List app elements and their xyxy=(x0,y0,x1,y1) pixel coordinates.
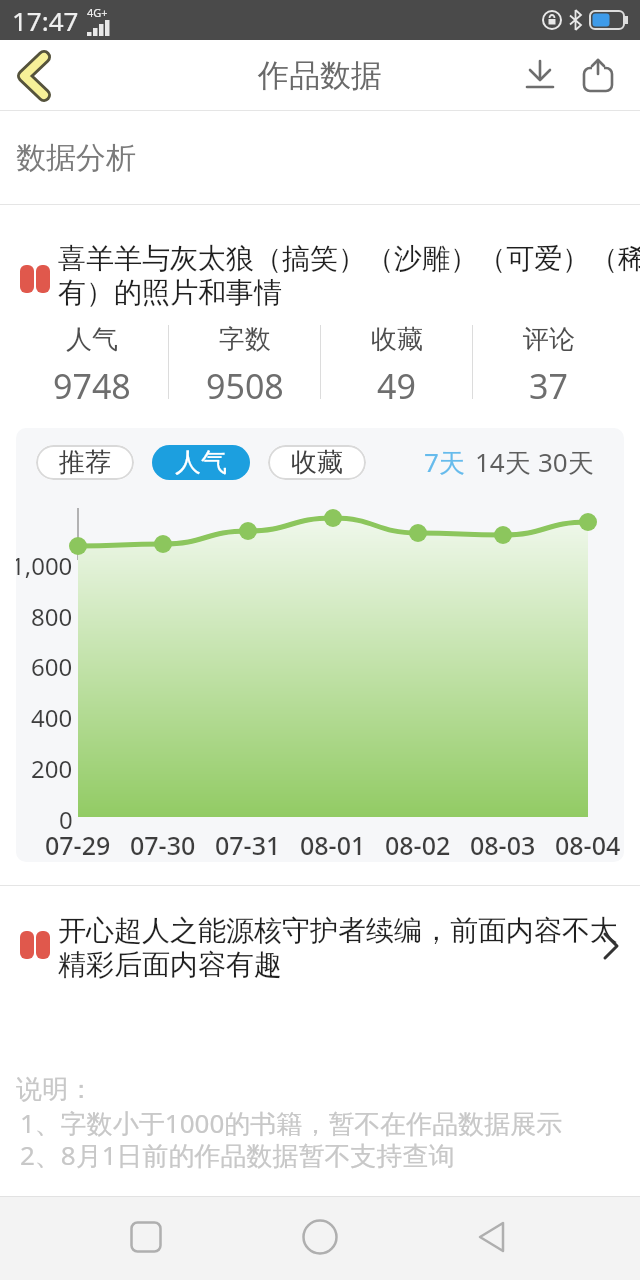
staticText: 字数 xyxy=(219,323,271,356)
button[interactable]: 人气 xyxy=(152,445,250,480)
staticText: 开心超人之能源核守护者续编，前面内容不太 xyxy=(58,913,618,947)
staticText: 17:47 xyxy=(12,3,79,38)
staticText: 2、8月1日前的作品数据暂不支持查询 xyxy=(20,1137,455,1169)
staticText: 37 xyxy=(529,363,568,401)
staticText: 喜羊羊与灰太狼（搞笑）（沙雕）（可爱）（稀 xyxy=(58,241,640,275)
staticText: 08-04 xyxy=(555,828,621,862)
button[interactable]: 14天 xyxy=(475,444,531,480)
staticText: 07-29 xyxy=(45,828,111,862)
button[interactable]: 喜羊羊与灰太狼（搞笑）（沙雕）（可爱）（稀 xyxy=(0,205,640,309)
staticText: 400 xyxy=(31,701,73,734)
staticText: 9508 xyxy=(206,363,284,401)
staticText: 推荐 xyxy=(59,446,111,479)
staticText: 49 xyxy=(377,363,416,401)
staticText: 08-02 xyxy=(385,828,451,862)
button[interactable]: 7天 xyxy=(424,444,465,480)
staticText: 600 xyxy=(31,650,73,683)
button[interactable] xyxy=(116,1207,176,1267)
button[interactable]: 30天 xyxy=(538,444,594,480)
staticText: 人气 xyxy=(175,446,227,479)
button[interactable] xyxy=(462,1207,522,1267)
staticText: 数据分析 xyxy=(16,139,136,177)
staticText: 9748 xyxy=(53,363,131,401)
staticText: 说明： xyxy=(16,1073,94,1105)
staticText: 人气 xyxy=(66,323,118,356)
button[interactable] xyxy=(12,53,56,97)
staticText: 07-30 xyxy=(130,828,196,862)
staticText: 800 xyxy=(31,600,73,633)
staticText: 1,000 xyxy=(16,549,73,582)
staticText: 08-01 xyxy=(300,828,366,862)
button[interactable] xyxy=(578,55,618,95)
staticText: 07-31 xyxy=(215,828,281,862)
staticText: 作品数据 xyxy=(258,56,382,95)
button[interactable] xyxy=(290,1207,350,1267)
staticText: 评论 xyxy=(523,323,575,356)
staticText: 精彩后面内容有趣 xyxy=(58,947,282,981)
staticText: 收藏 xyxy=(371,323,423,356)
button[interactable] xyxy=(520,55,560,95)
button[interactable]: 开心超人之能源核守护者续编，前面内容不太 xyxy=(0,886,640,981)
staticText: 1、字数小于1000的书籍，暂不在作品数据展示 xyxy=(20,1105,563,1137)
staticText: 有）的照片和事情 xyxy=(58,275,282,309)
staticText: 4G+ xyxy=(87,5,108,20)
staticText: 收藏 xyxy=(291,446,343,479)
staticText: 08-03 xyxy=(470,828,536,862)
button[interactable]: 推荐 xyxy=(36,445,134,480)
button[interactable]: 收藏 xyxy=(268,445,366,480)
staticText: 200 xyxy=(31,752,73,785)
staticText: 0 xyxy=(59,803,73,836)
